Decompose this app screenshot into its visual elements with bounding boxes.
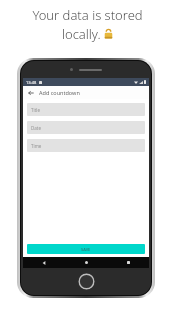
button[interactable]: Home (65, 257, 107, 268)
staticText: Time (31, 143, 42, 149)
staticText: Title (31, 107, 40, 113)
staticText: Date (31, 125, 41, 131)
button[interactable]: Back (26, 88, 35, 97)
staticText: SAVE (81, 247, 91, 252)
button[interactable]: Time (27, 139, 145, 152)
button[interactable]: Title (27, 103, 145, 116)
button[interactable]: Date (27, 121, 145, 134)
button[interactable]: Back (23, 257, 65, 268)
staticText: Your data is stored (32, 6, 143, 24)
button[interactable]: SAVE (27, 244, 145, 254)
button[interactable]: Recent apps (107, 257, 149, 268)
staticText: Add countdown (39, 89, 80, 96)
button[interactable]: Home button (78, 273, 95, 290)
staticText: locally. (62, 25, 101, 43)
staticText: 13:48 (26, 80, 37, 85)
